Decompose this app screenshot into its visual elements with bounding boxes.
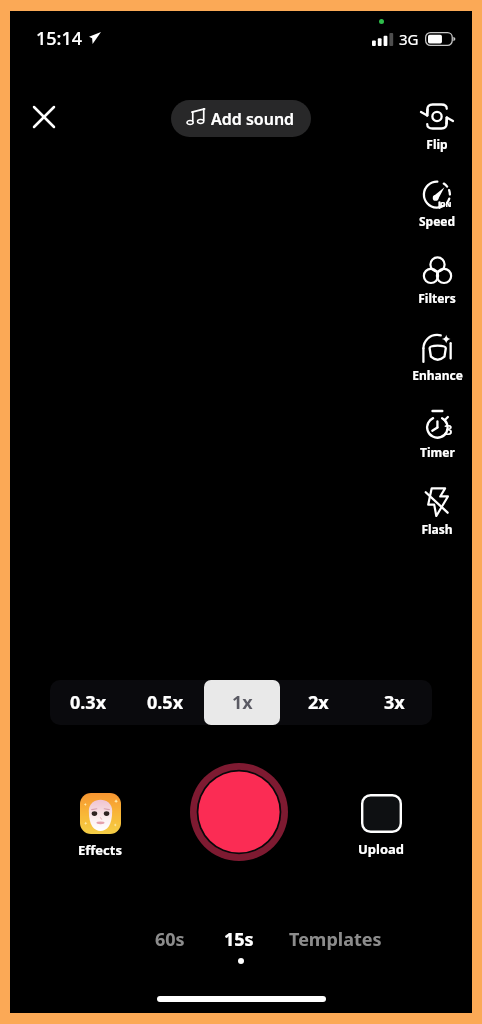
button[interactable]: Upload (340, 794, 422, 858)
button[interactable]: Add sound (171, 100, 311, 137)
button[interactable]: 1x (204, 680, 280, 725)
button[interactable]: 15s (214, 919, 264, 960)
button[interactable]: 0.5x (127, 680, 204, 725)
staticText: 15s (224, 927, 254, 952)
button[interactable]: Flip (401, 100, 473, 177)
staticText: 0.3x (70, 690, 107, 715)
button[interactable]: ON (401, 177, 473, 254)
staticText: Upload (358, 840, 405, 858)
staticText: 2x (308, 690, 329, 715)
button[interactable]: Flash (401, 485, 473, 562)
staticText: 3 (444, 419, 453, 439)
staticText: ON (440, 200, 452, 210)
staticText: 1x (232, 690, 253, 715)
button[interactable]: 3x (356, 680, 432, 725)
button[interactable]: 2x (280, 680, 356, 725)
button[interactable]: Close (26, 99, 62, 135)
staticText: Enhance (412, 367, 463, 383)
staticText: Templates (289, 927, 382, 952)
button[interactable]: 60s (145, 919, 195, 960)
staticText: Flip (426, 136, 448, 152)
button[interactable]: Enhance (401, 331, 473, 408)
staticText: 60s (155, 927, 185, 952)
staticText: Flash (421, 521, 453, 537)
staticText: 3x (384, 690, 405, 715)
staticText: Add sound (211, 108, 295, 130)
button[interactable]: Filters (401, 254, 473, 331)
staticText: Effects (78, 841, 122, 859)
staticText: 0.5x (147, 690, 184, 715)
staticText: 15:14 (36, 26, 83, 51)
button[interactable]: Effects (59, 793, 141, 859)
staticText: 3G (399, 29, 419, 49)
button[interactable]: 0.3x (50, 680, 127, 725)
staticText: Speed (419, 213, 456, 229)
button[interactable]: Record (190, 763, 288, 861)
staticText: Timer (420, 444, 455, 460)
button[interactable]: Templates (279, 919, 392, 960)
staticText: Filters (418, 290, 456, 306)
button[interactable]: 3 (401, 408, 473, 485)
